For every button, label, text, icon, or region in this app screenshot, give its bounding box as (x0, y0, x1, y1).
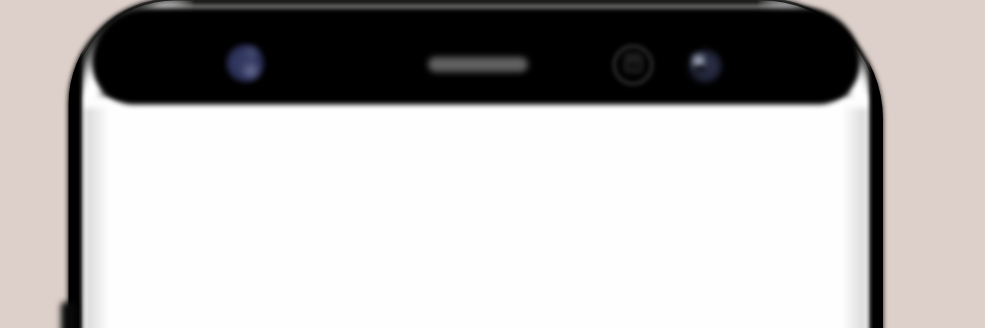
button[interactable]: Smartphone front view (0, 0, 985, 328)
